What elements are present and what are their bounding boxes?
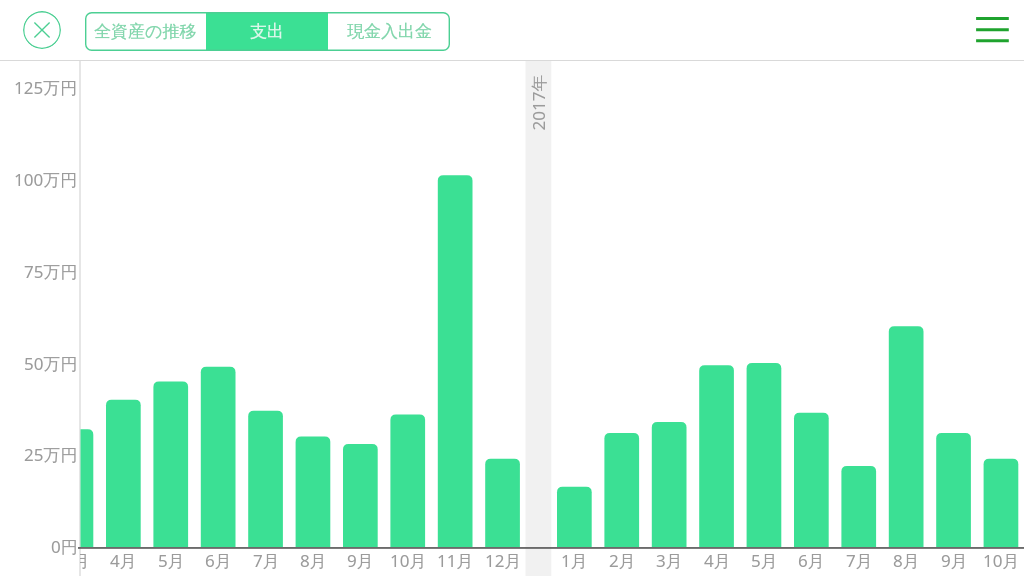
staticText: 0円 xyxy=(51,535,78,558)
button[interactable]: 支出 xyxy=(206,12,328,51)
staticText: 6月 xyxy=(205,549,232,572)
staticText: 9月 xyxy=(941,549,968,572)
staticText: 9月 xyxy=(347,549,374,572)
staticText: 5月 xyxy=(158,549,185,572)
staticText: 1月 xyxy=(561,549,588,572)
staticText: 2月 xyxy=(609,549,636,572)
staticText: 12月 xyxy=(485,549,522,572)
staticText: 6月 xyxy=(798,549,825,572)
button[interactable]: Menu xyxy=(968,6,1016,54)
staticText: 2017年 xyxy=(526,74,549,130)
staticText: 10月 xyxy=(983,549,1020,572)
staticText: 10月 xyxy=(390,549,427,572)
staticText: 4月 xyxy=(110,549,137,572)
staticText: 7月 xyxy=(253,549,280,572)
staticText: 8月 xyxy=(300,549,327,572)
staticText: 3月 xyxy=(656,549,683,572)
staticText: 11月 xyxy=(437,549,474,572)
staticText: 支出 xyxy=(250,21,284,42)
staticText: 25万円 xyxy=(24,443,78,466)
button[interactable]: Close xyxy=(23,11,61,49)
staticText: 5月 xyxy=(751,549,778,572)
staticText: 7月 xyxy=(846,549,873,572)
button[interactable]: 全資産の推移 xyxy=(85,12,206,51)
staticText: 8月 xyxy=(893,549,920,572)
staticText: 4月 xyxy=(704,549,731,572)
staticText: 75万円 xyxy=(24,260,78,283)
staticText: 50万円 xyxy=(24,352,78,375)
staticText: 3月 xyxy=(80,549,90,572)
staticText: 現金入出金 xyxy=(347,21,432,42)
staticText: 100万円 xyxy=(14,168,78,191)
staticText: 全資産の推移 xyxy=(94,21,197,42)
button[interactable]: 現金入出金 xyxy=(328,12,450,51)
staticText: 125万円 xyxy=(14,76,78,99)
